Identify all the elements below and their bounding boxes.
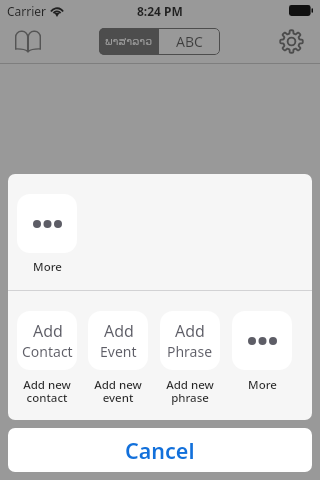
button[interactable]: More xyxy=(11,194,83,275)
staticText: Add xyxy=(104,320,134,342)
staticText: ພາສາລາວ xyxy=(105,35,153,48)
staticText: Carrier xyxy=(7,3,47,19)
button[interactable]: Add xyxy=(154,311,226,406)
button[interactable]: Add xyxy=(11,311,83,406)
staticText: Add xyxy=(175,320,205,342)
staticText: Contact xyxy=(22,342,73,361)
staticText: More xyxy=(33,259,62,275)
staticText: Add new contact xyxy=(23,377,71,406)
staticText: ABC xyxy=(176,32,203,51)
staticText: Add new event xyxy=(94,377,142,406)
staticText: Event xyxy=(100,342,137,361)
button[interactable]: ພາສາລາວ xyxy=(99,28,159,55)
button[interactable]: More xyxy=(226,311,298,393)
staticText: Add new phrase xyxy=(166,377,214,406)
button[interactable]: Dictionary xyxy=(11,25,44,56)
staticText: Add xyxy=(33,320,63,342)
staticText: Cancel xyxy=(125,436,195,465)
button[interactable]: Add xyxy=(82,311,154,406)
staticText: 8:24 PM xyxy=(137,3,183,19)
button[interactable]: ABC xyxy=(159,28,220,55)
button[interactable]: Settings xyxy=(275,26,308,57)
button[interactable]: Cancel xyxy=(8,428,312,472)
staticText: Phrase xyxy=(167,342,213,361)
staticText: More xyxy=(248,377,277,393)
